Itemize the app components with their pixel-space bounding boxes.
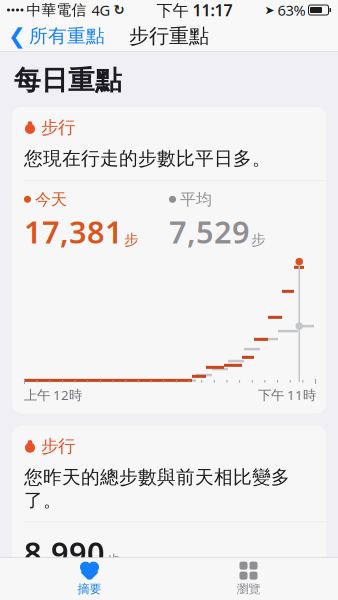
staticText: 瀏覽 xyxy=(236,582,260,596)
staticText: 每日重點 xyxy=(14,64,122,97)
staticText: 步行 xyxy=(41,436,75,457)
staticText: 下午 11:17 xyxy=(156,0,232,21)
button[interactable]: 瀏覽 xyxy=(169,558,328,600)
button[interactable]: ❮ xyxy=(0,18,105,54)
staticText: 所有重點 xyxy=(29,24,105,47)
staticText: 17,381 xyxy=(24,211,123,252)
staticText: 8,990 xyxy=(24,532,105,573)
staticText: 4G xyxy=(91,0,110,20)
staticText: 您現在行走的步數比平日多。 xyxy=(24,147,271,170)
staticText: 下午 11時 xyxy=(258,386,316,404)
button[interactable]: 摘要 xyxy=(10,558,169,600)
staticText: 今天 xyxy=(35,189,67,209)
staticText: 步行重點 xyxy=(129,24,209,48)
staticText: 步 xyxy=(106,552,121,570)
staticText: 7,529 xyxy=(169,211,250,252)
staticText: 您昨天的總步數與前天相比變多了。 xyxy=(24,466,290,512)
staticText: 平均 xyxy=(180,189,212,209)
staticText: ↻ xyxy=(113,2,124,17)
staticText: 摘要 xyxy=(77,582,101,596)
staticText: 步 xyxy=(251,231,266,249)
staticText: ❮ xyxy=(8,24,26,48)
staticText: 上午 12時 xyxy=(24,386,82,404)
staticText: 步行 xyxy=(41,117,75,138)
staticText: 63% xyxy=(277,0,305,20)
staticText: ➤ xyxy=(264,3,274,17)
staticText: 步 xyxy=(124,231,139,249)
staticText: 中華電信 xyxy=(26,1,86,19)
